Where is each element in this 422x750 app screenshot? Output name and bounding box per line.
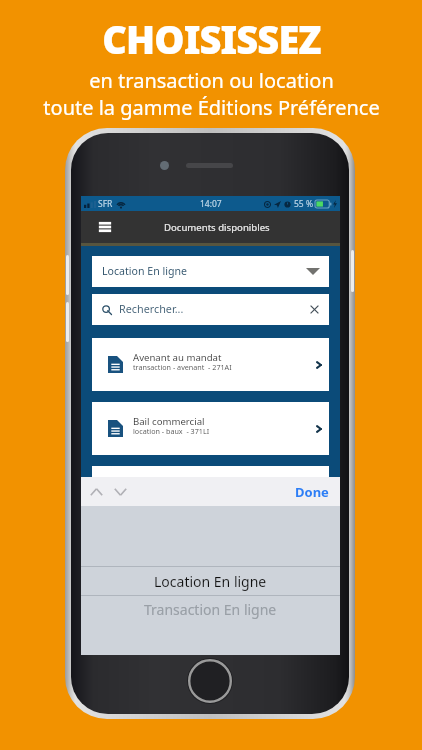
staticText: 14:07: [200, 198, 222, 210]
staticText: CHOISISSEZ: [102, 13, 321, 65]
staticText: toute la gamme Éditions Préférence: [43, 94, 380, 121]
staticText: Documents disponibles: [164, 221, 270, 234]
staticText: Rechercher...: [119, 301, 184, 316]
staticText: transaction - avenant - 271AI: [133, 362, 232, 372]
staticText: Transaction En ligne: [144, 600, 277, 619]
staticText: Location En ligne: [154, 572, 267, 591]
button[interactable]: Rechercher...: [92, 294, 329, 325]
staticText: Done: [295, 483, 329, 501]
button[interactable]: Next field: [114, 488, 127, 496]
button[interactable]: Bail commercial: [92, 402, 329, 455]
button[interactable]: Location En ligne: [92, 256, 329, 287]
button[interactable]: Avenant au mandat: [92, 338, 329, 391]
button[interactable]: Menu: [95, 216, 115, 238]
staticText: Location En ligne: [102, 264, 187, 278]
button[interactable]: Done: [295, 483, 329, 501]
staticText: en transaction ou location: [89, 67, 334, 94]
button[interactable]: Previous field: [90, 488, 103, 496]
staticText: Bail commercial: [133, 415, 205, 428]
staticText: Avenant au mandat: [133, 351, 222, 364]
staticText: 55 %: [294, 198, 313, 210]
staticText: location - baux - 371LI: [133, 426, 210, 436]
staticText: SFR: [98, 198, 113, 210]
